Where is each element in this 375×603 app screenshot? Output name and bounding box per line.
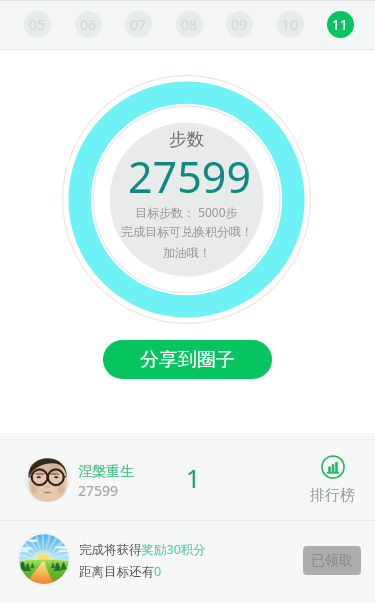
staticText: 07 xyxy=(130,15,147,34)
staticText: 27599 xyxy=(128,147,251,206)
staticText: 完成目标可兑换积分哦！ xyxy=(121,224,253,239)
staticText: 已领取 xyxy=(311,552,353,570)
staticText: 加油哦！ xyxy=(163,245,211,260)
staticText: 距离目标还有0 xyxy=(79,563,162,580)
staticText: 10 xyxy=(282,15,299,34)
staticText: 完成将获得奖励30积分 xyxy=(79,541,206,558)
staticText: 分享到圈子 xyxy=(140,348,235,372)
staticText: 08 xyxy=(181,15,198,34)
button[interactable]: 09 xyxy=(226,11,253,38)
button[interactable]: 分享到圈子 xyxy=(103,340,272,379)
button[interactable]: 05 xyxy=(24,11,51,38)
staticText: 11 xyxy=(332,15,349,34)
button[interactable]: 06 xyxy=(75,11,102,38)
staticText: 09 xyxy=(231,15,248,34)
button[interactable]: 07 xyxy=(125,11,152,38)
button[interactable]: 10 xyxy=(277,11,304,38)
staticText: 排行榜 xyxy=(310,486,355,505)
button[interactable]: 已领取 xyxy=(303,546,361,575)
staticText: 步数 xyxy=(169,128,204,150)
staticText: 涅槃重生 xyxy=(78,463,134,481)
staticText: 06 xyxy=(80,15,97,34)
button[interactable]: 08 xyxy=(176,11,203,38)
staticText: 05 xyxy=(29,15,46,34)
staticText: 1 xyxy=(186,461,201,495)
staticText: 27599 xyxy=(78,481,119,500)
button[interactable]: 11 xyxy=(327,11,354,38)
staticText: 目标步数： 5000步 xyxy=(135,204,238,220)
button[interactable]: 排行榜 xyxy=(309,451,356,511)
button[interactable]: 涅槃重生 xyxy=(0,441,375,520)
